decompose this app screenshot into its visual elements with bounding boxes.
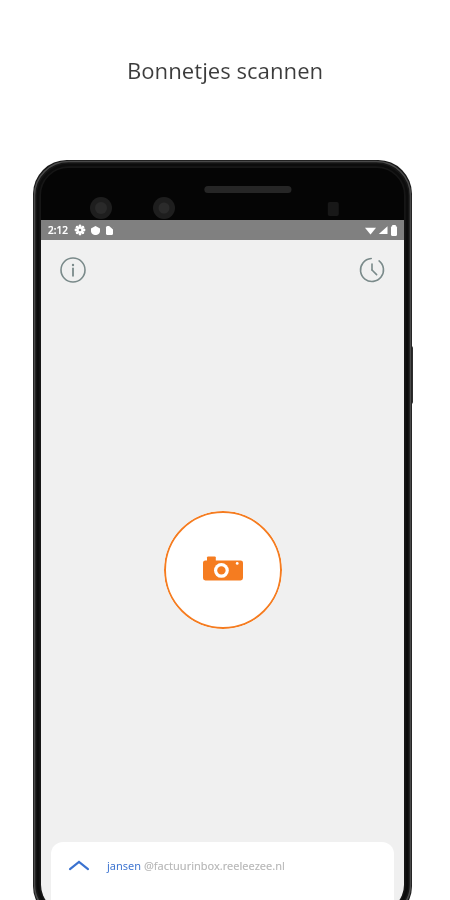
button[interactable]: History (350, 248, 394, 292)
staticText: jansen @factuurinbox.reeleezee.nl (107, 858, 285, 873)
button[interactable]: Scan receipt (164, 511, 282, 629)
button[interactable]: jansen @factuurinbox.reeleezee.nl (51, 842, 394, 900)
staticText: Bonnetjes scannen (127, 55, 324, 85)
staticText: 2:12 (48, 223, 68, 237)
button[interactable]: Info (51, 248, 95, 292)
